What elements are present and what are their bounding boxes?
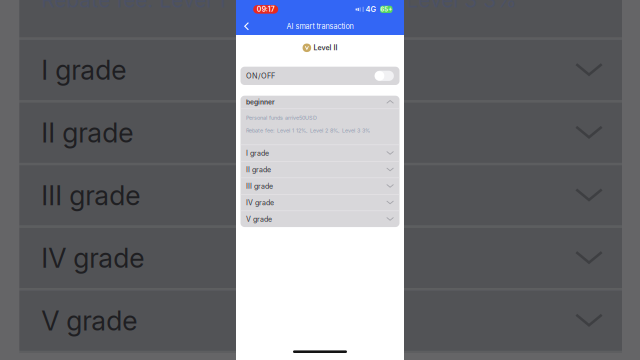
staticText: Rebate fee: Level 1 12%, Level 2 8%, Lev…	[41, 0, 516, 12]
staticText: I grade	[41, 54, 126, 86]
staticText: Personal funds arrive50USD	[246, 115, 317, 121]
button[interactable]: III grade	[240, 178, 399, 194]
staticText: 65+	[380, 6, 392, 13]
button[interactable]: Back	[236, 17, 260, 35]
staticText: IV grade	[246, 198, 274, 207]
staticText: Level II	[313, 43, 337, 52]
staticText: V grade	[246, 215, 272, 223]
staticText: III grade	[41, 179, 140, 212]
staticText: Rebate fee: Level 1 12%, Level 2 8%, Lev…	[246, 127, 370, 134]
button[interactable]: II grade	[240, 161, 399, 178]
button[interactable]: IV grade	[240, 194, 399, 211]
staticText: II grade	[246, 165, 271, 174]
button[interactable]: Enable AI smart transaction	[374, 71, 394, 81]
staticText: I grade	[246, 149, 269, 157]
staticText: ON/OFF	[246, 71, 275, 80]
button[interactable]: I grade	[240, 145, 399, 161]
button[interactable]: beginner	[240, 96, 399, 108]
staticText: V grade	[41, 304, 137, 337]
staticText: IV grade	[41, 242, 144, 274]
staticText: beginner	[246, 98, 275, 106]
staticText: 09:17	[257, 5, 275, 14]
button[interactable]: V grade	[240, 211, 399, 227]
staticText: III grade	[246, 182, 273, 190]
staticText: AI smart transaction	[286, 22, 353, 31]
staticText: 4G	[365, 5, 376, 14]
staticText: II grade	[41, 116, 133, 149]
